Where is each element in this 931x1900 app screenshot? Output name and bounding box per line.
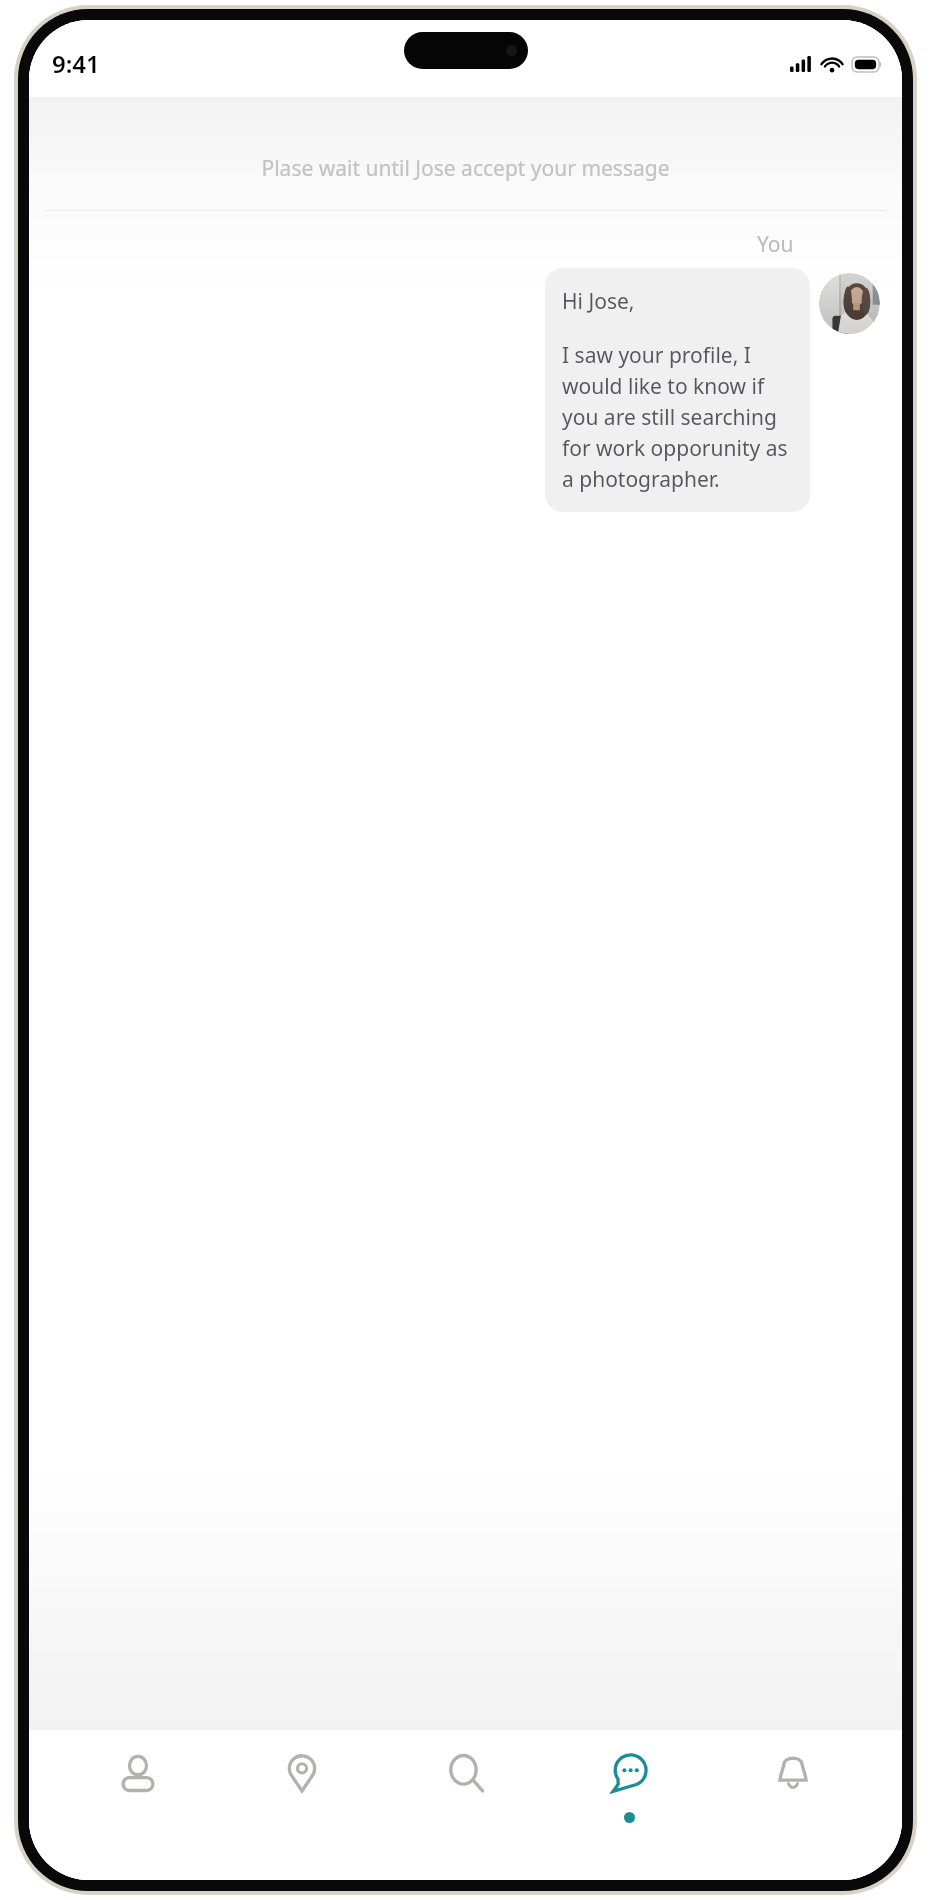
button[interactable]: Profile: [83, 1744, 193, 1818]
staticText: I saw your profile, I would like to know…: [562, 341, 793, 493]
button[interactable]: Hi Jose,: [545, 268, 810, 512]
button[interactable]: Places: [247, 1744, 357, 1818]
button[interactable]: Messages: [574, 1744, 684, 1829]
button[interactable]: Your profile photo: [819, 273, 880, 334]
button[interactable]: Search: [411, 1744, 521, 1818]
button[interactable]: Notifications: [738, 1744, 848, 1818]
staticText: 9:41: [52, 47, 100, 80]
staticText: You: [757, 230, 794, 259]
staticText: Hi Jose,: [562, 287, 635, 316]
staticText: Plase wait until Jose accept your messag…: [29, 154, 902, 183]
